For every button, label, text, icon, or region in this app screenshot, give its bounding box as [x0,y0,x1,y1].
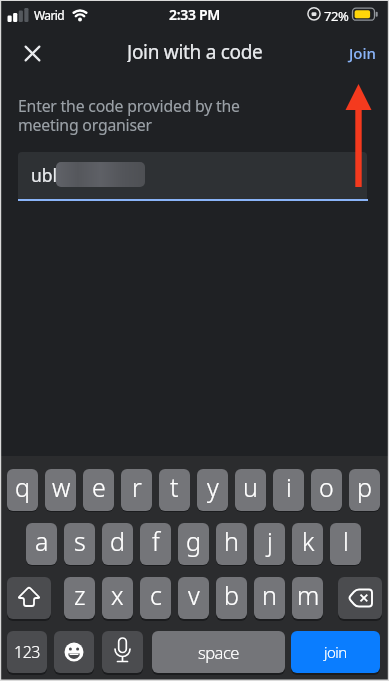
button[interactable]: m [292,577,323,619]
button[interactable]: s [64,523,95,565]
button[interactable] [102,631,143,673]
staticText: d [110,524,125,558]
button[interactable] [338,577,382,619]
button[interactable] [7,577,51,619]
button[interactable]: t [159,469,190,511]
staticText: n [262,578,277,612]
staticText: b [224,578,239,612]
button[interactable]: o [311,469,342,511]
staticText: v [188,578,200,612]
staticText: e [92,470,106,504]
staticText: q [15,470,30,504]
staticText: h [224,524,239,558]
staticText: Warid [34,7,65,23]
staticText: s [74,524,86,558]
button[interactable]: z [64,577,95,619]
staticText: t [170,470,179,504]
button[interactable]: q [7,469,38,511]
staticText: x [111,578,124,612]
button[interactable]: h [216,523,247,565]
button[interactable]: ubl [18,152,367,199]
button[interactable] [17,38,47,68]
staticText: k [302,524,314,558]
button[interactable]: join [291,631,380,673]
staticText: y [207,470,219,504]
button[interactable]: i [273,469,304,511]
button[interactable]: b [216,577,247,619]
staticText: r [132,470,142,504]
button[interactable]: k [292,523,323,565]
staticText: 72% [324,7,349,25]
staticText: 2:33 PM [169,5,221,22]
button[interactable]: n [254,577,285,619]
staticText: ubl [31,163,58,187]
button[interactable]: d [102,523,133,565]
staticText: u [243,470,258,504]
staticText: a [35,524,48,558]
button[interactable]: a [26,523,57,565]
staticText: w [52,470,70,504]
button[interactable]: w [45,469,76,511]
staticText: 123 [14,641,40,663]
staticText: j [267,524,273,558]
button[interactable]: f [140,523,171,565]
button[interactable]: p [349,469,380,511]
staticText: join [324,642,347,662]
staticText: m [297,578,319,612]
staticText: z [74,578,86,612]
button[interactable]: e [83,469,114,511]
button[interactable] [54,631,94,673]
staticText: l [343,524,349,558]
button[interactable]: u [235,469,266,511]
button[interactable]: j [254,523,285,565]
staticText: Join [349,43,376,63]
button[interactable]: l [330,523,361,565]
button[interactable]: g [178,523,209,565]
staticText: g [186,524,201,558]
staticText: f [152,524,160,558]
button[interactable]: v [178,577,209,619]
staticText: space [198,641,239,663]
button[interactable]: y [197,469,228,511]
staticText: c [150,578,162,612]
button[interactable]: Join [344,40,380,66]
button[interactable]: x [102,577,133,619]
button[interactable]: c [140,577,171,619]
staticText: Enter the code provided by the meeting o… [18,95,240,135]
button[interactable]: r [121,469,152,511]
staticText: Join with a code [127,39,263,62]
button[interactable]: space [152,631,285,673]
staticText: p [357,470,372,504]
button[interactable]: 123 [7,631,47,673]
staticText: o [319,470,334,504]
staticText: i [286,470,292,504]
